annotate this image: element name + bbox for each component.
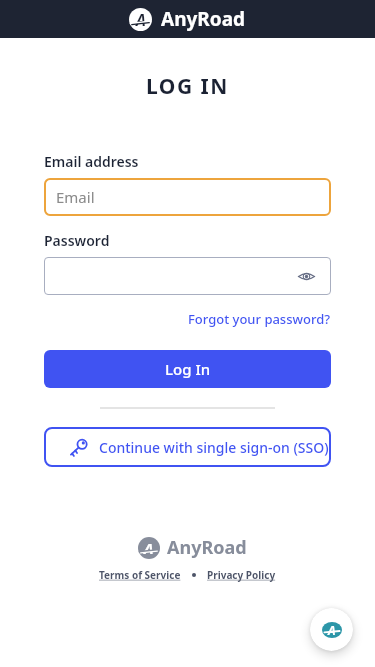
button[interactable]: Terms of Service: [99, 568, 181, 582]
staticText: Email address: [44, 152, 139, 171]
staticText: A: [136, 9, 146, 30]
button[interactable]: [44, 257, 331, 295]
staticText: A: [144, 538, 154, 558]
button[interactable]: Log In: [44, 350, 331, 388]
staticText: AnyRoad: [161, 6, 246, 32]
staticText: Log In: [165, 359, 211, 379]
staticText: Password: [44, 231, 110, 250]
button[interactable]: Forgot your password?: [188, 310, 331, 328]
staticText: AnyRoad: [167, 535, 247, 560]
button[interactable]: Email: [44, 178, 331, 216]
staticText: LOG IN: [146, 72, 229, 101]
button[interactable]: A: [310, 608, 353, 651]
button[interactable]: Continue with single sign-on (SSO): [44, 427, 331, 467]
button[interactable]: Privacy Policy: [207, 568, 276, 582]
staticText: A: [328, 622, 336, 638]
staticText: Continue with single sign-on (SSO): [99, 438, 329, 457]
staticText: Email: [56, 187, 95, 207]
